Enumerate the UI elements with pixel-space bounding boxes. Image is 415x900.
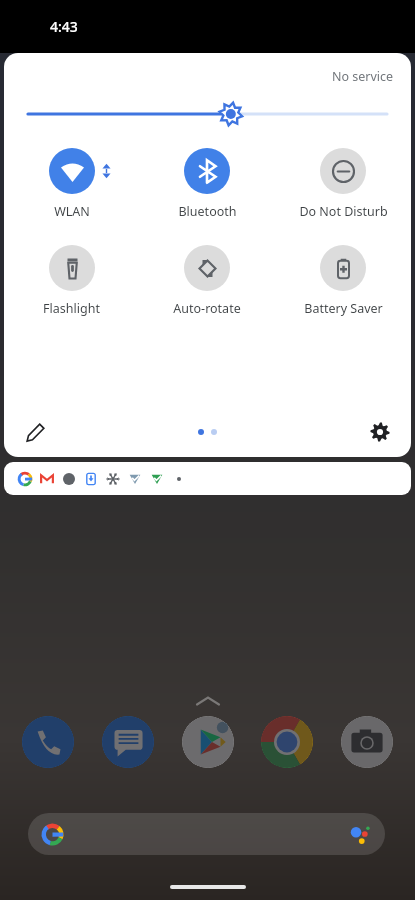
button[interactable]: App [182,716,234,768]
button[interactable]: Do Not Disturb [275,148,411,220]
button[interactable]: App [261,716,313,768]
button[interactable]: No service [332,68,394,85]
button[interactable]: Battery Saver [275,245,411,317]
button[interactable]: Auto-rotate [139,245,275,317]
button[interactable]: Bluetooth [139,148,275,220]
staticText: Auto-rotate [173,300,241,317]
button[interactable]: Settings [363,415,397,449]
button[interactable]: App [22,716,74,768]
button[interactable]: Notifications [4,462,411,495]
button[interactable]: App [341,716,393,768]
button[interactable]: App [102,716,154,768]
staticText: Battery Saver [304,300,383,317]
button[interactable]: WLAN [4,148,139,220]
button[interactable]: Brightness [28,100,387,128]
staticText: Bluetooth [178,203,237,220]
button[interactable]: Flashlight [4,245,139,317]
staticText: Flashlight [43,300,100,317]
button[interactable]: Google Search [28,813,385,855]
staticText: 4:43 [50,17,78,36]
staticText: WLAN [54,203,90,220]
button[interactable]: Edit tiles [18,415,52,449]
staticText: Do Not Disturb [299,203,388,220]
